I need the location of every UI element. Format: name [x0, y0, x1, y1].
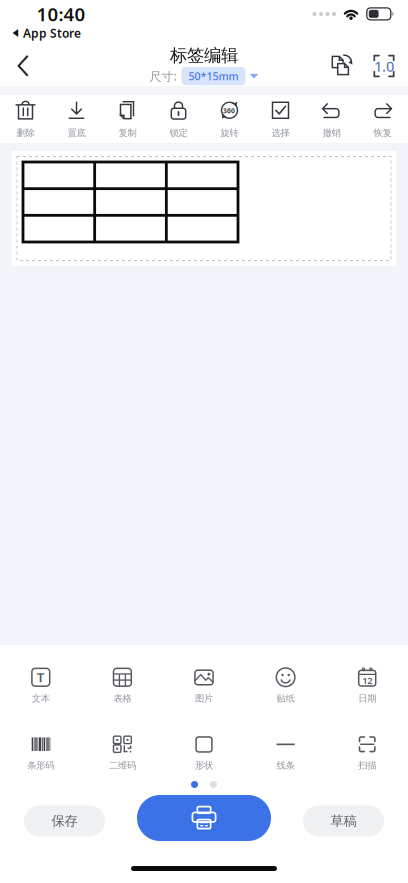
staticText: 形状 — [195, 760, 213, 771]
staticText: 删除 — [16, 127, 34, 139]
button[interactable]: 锁定 — [153, 95, 204, 143]
staticText: 恢复 — [373, 127, 391, 139]
staticText: 复制 — [118, 127, 136, 139]
staticText: 图片 — [195, 693, 213, 704]
button[interactable]: T — [0, 657, 82, 714]
button[interactable]: 扫描 — [326, 724, 408, 781]
button[interactable]: 贴纸 — [245, 657, 326, 714]
button[interactable]: Back — [2, 46, 46, 86]
staticText: 选择 — [271, 127, 289, 139]
button[interactable]: Print — [137, 795, 271, 841]
button[interactable]: 线条 — [245, 724, 326, 781]
staticText: 置底 — [67, 127, 85, 139]
button[interactable]: 表格 — [82, 657, 163, 714]
staticText: 文本 — [32, 693, 50, 704]
button[interactable]: 恢复 — [357, 95, 408, 143]
staticText: 锁定 — [169, 127, 187, 139]
button[interactable]: 图片 — [163, 657, 245, 714]
button[interactable]: 条形码 — [0, 724, 82, 781]
button[interactable]: 形状 — [163, 724, 245, 781]
button[interactable]: 置底 — [51, 95, 102, 143]
staticText: 标签编辑 — [170, 45, 238, 66]
button[interactable]: 复制 — [102, 95, 153, 143]
staticText: 撤销 — [322, 127, 340, 139]
staticText: 扫描 — [358, 760, 376, 771]
button[interactable]: 删除 — [0, 95, 51, 143]
staticText: 线条 — [277, 760, 295, 771]
staticText: 条形码 — [27, 760, 54, 771]
button[interactable]: 撤销 — [306, 95, 357, 143]
staticText: 旋转 — [220, 127, 238, 139]
staticText: 贴纸 — [277, 693, 295, 704]
button[interactable]: 保存 — [24, 802, 105, 833]
staticText: 保存 — [51, 813, 77, 829]
staticText: T — [37, 668, 45, 686]
staticText: 12 — [362, 674, 372, 686]
staticText: 50*15mm — [188, 69, 238, 83]
button[interactable]: 草稿 — [303, 802, 384, 833]
button[interactable]: 360 — [204, 95, 255, 143]
staticText: App Store — [23, 25, 81, 41]
button[interactable]: Duplicate — [323, 46, 363, 86]
staticText: 尺寸: — [149, 68, 176, 84]
button[interactable]: Scale — [364, 46, 404, 86]
staticText: 日期 — [358, 693, 376, 704]
staticText: 表格 — [113, 693, 131, 704]
staticText: 360 — [223, 106, 235, 115]
button[interactable]: 二维码 — [82, 724, 163, 781]
staticText: 二维码 — [109, 760, 136, 771]
staticText: 草稿 — [330, 813, 356, 829]
staticText: 1.0 — [374, 56, 394, 76]
button[interactable]: 选择 — [255, 95, 306, 143]
button[interactable]: 12 — [326, 657, 408, 714]
staticText: 10:40 — [36, 2, 85, 26]
